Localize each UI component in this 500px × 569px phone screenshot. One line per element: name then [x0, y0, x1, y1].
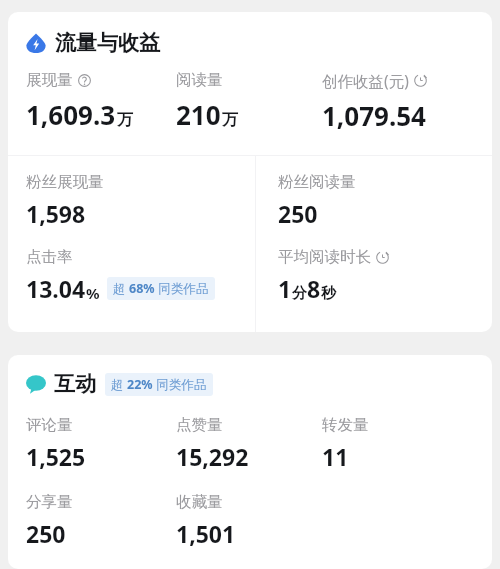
button[interactable]: 创作收益(元) — [322, 70, 427, 133]
staticText: 1,525 — [26, 441, 86, 472]
button[interactable]: 粉丝展现量 — [26, 172, 104, 229]
staticText: 分 — [292, 284, 307, 303]
button[interactable]: 时间说明 — [414, 74, 427, 87]
staticText: 13.04 — [26, 273, 86, 304]
other: 互动 — [26, 374, 46, 394]
staticText: 创作收益(元) — [322, 70, 409, 91]
button[interactable]: 时间说明 — [376, 251, 389, 264]
button[interactable]: 评论量 — [26, 415, 86, 472]
staticText: 点击率 — [26, 247, 73, 267]
staticText: 11 — [322, 441, 349, 472]
staticText: 68% — [129, 280, 155, 297]
button[interactable]: 点击率 — [26, 247, 215, 304]
button[interactable]: 分享量 — [26, 492, 73, 549]
staticText: 1 — [278, 273, 292, 304]
staticText: 超 — [111, 376, 127, 393]
staticText: 粉丝阅读量 — [278, 172, 356, 192]
staticText: 万 — [117, 110, 133, 130]
staticText: 15,292 — [176, 441, 249, 472]
button[interactable]: 互动 — [8, 355, 492, 401]
button[interactable]: 粉丝阅读量 — [278, 172, 356, 229]
button[interactable]: 展现量 — [26, 70, 133, 132]
button[interactable]: 超 — [105, 373, 213, 396]
staticText: 万 — [222, 110, 238, 130]
button[interactable]: 转发量 — [322, 415, 369, 472]
button[interactable]: 流量与收益 — [8, 12, 492, 62]
staticText: 1,501 — [176, 518, 236, 549]
staticText: 250 — [278, 198, 318, 229]
staticText: 秒 — [321, 284, 336, 303]
button[interactable]: 平均阅读时长 — [278, 247, 389, 304]
button[interactable]: 点赞量 — [176, 415, 249, 472]
staticText: 同类作品 — [155, 280, 209, 297]
button[interactable]: 超 — [107, 277, 215, 300]
staticText: 同类作品 — [153, 376, 207, 393]
staticText: 展现量 — [26, 70, 73, 90]
staticText: 转发量 — [322, 415, 369, 435]
staticText: 1,079.54 — [322, 98, 426, 133]
staticText: 超 — [113, 280, 129, 297]
button[interactable]: 阅读量 — [176, 70, 238, 132]
staticText: 1,598 — [26, 198, 86, 229]
button[interactable]: 说明 — [78, 74, 91, 87]
staticText: 流量与收益 — [55, 30, 160, 56]
staticText: 22% — [127, 376, 153, 393]
staticText: 8 — [307, 273, 321, 304]
other: 流量与收益 — [26, 33, 46, 53]
staticText: 互动 — [54, 371, 96, 397]
staticText: 点赞量 — [176, 415, 223, 435]
staticText: 250 — [26, 518, 66, 549]
staticText: 阅读量 — [176, 70, 223, 90]
staticText: 收藏量 — [176, 492, 223, 512]
staticText: % — [86, 283, 100, 303]
button[interactable]: 收藏量 — [176, 492, 236, 549]
staticText: 平均阅读时长 — [278, 247, 371, 267]
staticText: 评论量 — [26, 415, 73, 435]
staticText: 210 — [176, 97, 221, 132]
staticText: 1,609.3 — [26, 97, 116, 132]
staticText: 粉丝展现量 — [26, 172, 104, 192]
staticText: 分享量 — [26, 492, 73, 512]
